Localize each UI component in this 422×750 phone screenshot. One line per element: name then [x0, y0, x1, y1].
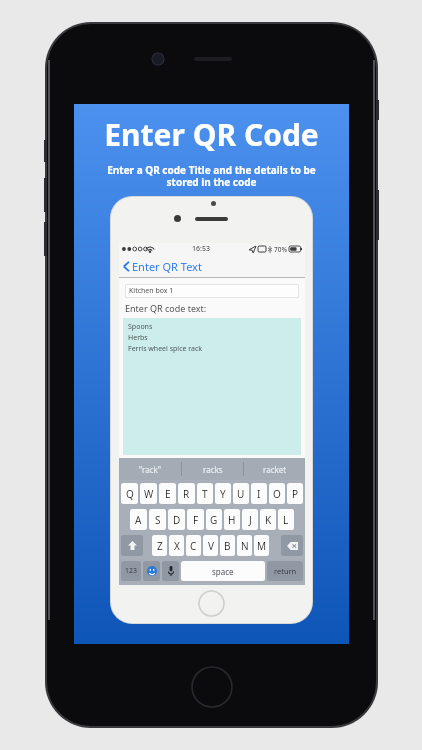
staticText: O	[273, 487, 281, 501]
staticText: Y	[220, 487, 226, 501]
staticText: G	[210, 513, 218, 527]
staticText: X	[174, 539, 180, 553]
button[interactable]: H	[224, 509, 240, 530]
staticText: S	[155, 513, 161, 527]
staticText: Q	[126, 487, 134, 501]
button[interactable]: U	[233, 483, 249, 504]
staticText: F	[193, 513, 199, 527]
staticText: U	[237, 487, 245, 501]
button[interactable]: D	[168, 509, 185, 530]
button[interactable]: M	[254, 535, 269, 556]
button[interactable]: Z	[152, 535, 167, 556]
button[interactable]: B	[220, 535, 235, 556]
staticText: E	[165, 487, 171, 501]
staticText: Ferris wheel spice rack	[128, 344, 203, 354]
staticText: 16:53	[192, 244, 210, 254]
button[interactable]: Backspace	[281, 535, 303, 556]
staticText: 70%	[274, 245, 287, 254]
button[interactable]: R	[178, 483, 195, 504]
button[interactable]: L	[278, 509, 294, 530]
staticText: J	[249, 513, 252, 527]
staticText: M	[257, 539, 267, 553]
staticText: racket	[263, 464, 287, 475]
button[interactable]: E	[159, 483, 176, 504]
button[interactable]: Shift	[121, 535, 143, 556]
staticText: W	[144, 487, 154, 501]
button[interactable]: Emoji	[143, 561, 160, 581]
staticText: Enter a QR code Title and the details to…	[107, 163, 316, 189]
staticText: Herbs	[128, 333, 148, 343]
button[interactable]: W	[140, 483, 157, 504]
button[interactable]: Dictate	[162, 561, 179, 581]
staticText: I	[257, 487, 261, 501]
button[interactable]: Y	[215, 483, 231, 504]
button[interactable]: X	[169, 535, 184, 556]
button[interactable]: Numbers	[121, 561, 141, 581]
staticText: B	[224, 539, 231, 553]
staticText: Enter QR code text:	[125, 302, 207, 314]
staticText: V	[208, 539, 214, 553]
button[interactable]: racket	[244, 458, 305, 480]
staticText: H	[228, 513, 236, 527]
staticText: Enter QR Text	[132, 259, 202, 274]
staticText: T	[202, 487, 208, 501]
staticText: P	[292, 487, 299, 501]
staticText: L	[283, 513, 289, 527]
staticText: R	[183, 487, 190, 501]
button[interactable]: F	[187, 509, 204, 530]
button[interactable]: racks	[182, 458, 243, 480]
staticText: Kitchen box 1	[129, 286, 174, 296]
staticText: "rack"	[139, 464, 162, 475]
button[interactable]: S	[149, 509, 166, 530]
button[interactable]: V	[203, 535, 218, 556]
button[interactable]: Back to Enter QR Text	[119, 255, 305, 277]
button[interactable]: Q	[121, 483, 138, 504]
button[interactable]: Return	[267, 561, 303, 581]
staticText: A	[135, 513, 142, 527]
staticText: Enter QR Code	[104, 114, 319, 155]
button[interactable]: "rack"	[119, 458, 181, 480]
staticText: racks	[203, 464, 223, 475]
button[interactable]: C	[186, 535, 201, 556]
button[interactable]: P	[287, 483, 303, 504]
button[interactable]: N	[237, 535, 252, 556]
button[interactable]: K	[260, 509, 276, 530]
staticText: return	[274, 566, 297, 576]
button[interactable]: G	[206, 509, 222, 530]
staticText: K	[265, 513, 272, 527]
button[interactable]: space	[181, 561, 265, 581]
button[interactable]: J	[242, 509, 258, 530]
staticText: N	[241, 539, 249, 553]
staticText: D	[173, 513, 181, 527]
button[interactable]: A	[130, 509, 147, 530]
staticText: 123	[125, 566, 138, 576]
staticText: space	[212, 566, 234, 577]
button[interactable]: I	[251, 483, 267, 504]
button[interactable]: O	[269, 483, 285, 504]
button[interactable]: Spoons	[123, 318, 301, 455]
staticText: Z	[157, 539, 163, 553]
staticText: Spoons	[128, 322, 153, 332]
button[interactable]: Kitchen box 1	[125, 284, 299, 298]
button[interactable]: T	[197, 483, 213, 504]
staticText: C	[190, 539, 197, 553]
